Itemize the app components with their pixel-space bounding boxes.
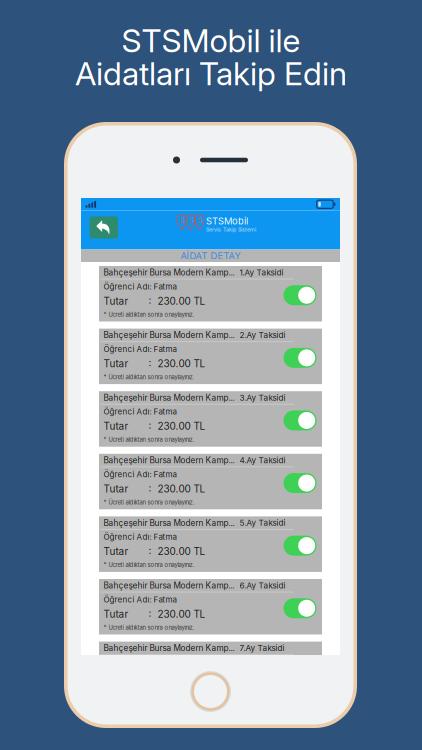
- staticText: : 230.00 TL: [148, 671, 205, 683]
- staticText: Servis Takip Sistemi: [206, 226, 256, 233]
- staticText: Öğrenci Adı: Fatma: [103, 595, 176, 604]
- staticText: Bahçeşehir Bursa Modern Kamp...: [103, 518, 234, 528]
- button[interactable]: Bahçeşehir Bursa Modern Kamp...: [99, 704, 322, 750]
- staticText: Bahçeşehir Bursa Modern Kamp...: [103, 330, 234, 340]
- button[interactable]: Back: [89, 216, 118, 238]
- button[interactable]: Bahçeşehir Bursa Modern Kamp...: [99, 642, 322, 697]
- staticText: Öğrenci Adı: Fatma: [103, 407, 176, 417]
- staticText: * Ücreti aldıktan sonra onaylayınız.: [103, 436, 194, 443]
- button[interactable]: Bahçeşehir Bursa Modern Kamp...: [99, 516, 322, 572]
- staticText: * Ücreti aldıktan sonra onaylayınız.: [103, 624, 194, 631]
- staticText: : 230.00 TL: [148, 358, 205, 370]
- staticText: Öğrenci Adı: Fatma: [103, 720, 176, 730]
- staticText: * Ücreti aldıktan sonra onaylayınız.: [103, 499, 194, 506]
- staticText: Tutar: [103, 545, 128, 557]
- button[interactable]: Bahçeşehir Bursa Modern Kamp...: [99, 329, 322, 384]
- button[interactable]: Bahçeşehir Bursa Modern Kamp...: [99, 391, 322, 447]
- staticText: Öğrenci Adı: Fatma: [103, 282, 176, 291]
- staticText: Tutar: [103, 358, 128, 370]
- staticText: * Ücreti aldıktan sonra onaylayınız.: [103, 687, 194, 694]
- staticText: : 230.00 TL: [148, 483, 205, 495]
- staticText: * Ücreti aldıktan sonra onaylayınız.: [103, 561, 194, 568]
- staticText: Bahçeşehir Bursa Modern Kamp...: [103, 706, 234, 716]
- staticText: Bahçeşehir Bursa Modern Kamp...: [103, 267, 234, 277]
- staticText: STSMobil: [206, 215, 248, 227]
- staticText: : 230.00 TL: [148, 608, 205, 620]
- staticText: 5.Ay Taksidi: [239, 518, 285, 528]
- staticText: Bahçeşehir Bursa Modern Kamp...: [103, 393, 234, 403]
- staticText: S: [180, 216, 184, 225]
- staticText: Tutar: [103, 420, 128, 432]
- staticText: Öğrenci Adı: Fatma: [103, 469, 176, 479]
- staticText: : 230.00 TL: [148, 295, 205, 307]
- button[interactable]: Bahçeşehir Bursa Modern Kamp...: [99, 266, 322, 321]
- staticText: 6.Ay Taksidi: [239, 581, 285, 590]
- staticText: Aidatları Takip Edin: [75, 54, 347, 93]
- staticText: AİDAT DETAY: [180, 250, 240, 261]
- staticText: 4.Ay Taksidi: [239, 455, 285, 465]
- button[interactable]: Bahçeşehir Bursa Modern Kamp...: [99, 454, 322, 509]
- staticText: Tutar: [103, 608, 128, 620]
- staticText: Öğrenci Adı: Fatma: [103, 344, 176, 354]
- staticText: Bahçeşehir Bursa Modern Kamp...: [103, 580, 234, 590]
- staticText: Tutar: [103, 483, 128, 495]
- button[interactable]: Bahçeşehir Bursa Modern Kamp...: [99, 579, 322, 634]
- staticText: Bahçeşehir Bursa Modern Kamp...: [103, 643, 234, 653]
- staticText: : 230.00 TL: [148, 420, 205, 432]
- staticText: * Ücreti aldıktan sonra onaylayınız.: [103, 374, 194, 381]
- staticText: Tutar: [103, 295, 128, 307]
- staticText: 1.Ay Taksidi: [239, 268, 283, 277]
- staticText: 2.Ay Taksidi: [239, 330, 285, 340]
- staticText: * Ücreti aldıktan sonra onaylayınız.: [103, 311, 194, 318]
- staticText: S: [197, 216, 201, 225]
- staticText: Bahçeşehir Bursa Modern Kamp...: [103, 455, 234, 465]
- staticText: : 230.00 TL: [148, 545, 205, 557]
- staticText: STSMobil ile: [121, 21, 300, 60]
- staticText: S: [188, 216, 192, 225]
- staticText: Öğrenci Adı: Fatma: [103, 532, 176, 542]
- staticText: 7.Ay Taksidi: [239, 643, 284, 653]
- staticText: 3.Ay Taksidi: [239, 393, 285, 403]
